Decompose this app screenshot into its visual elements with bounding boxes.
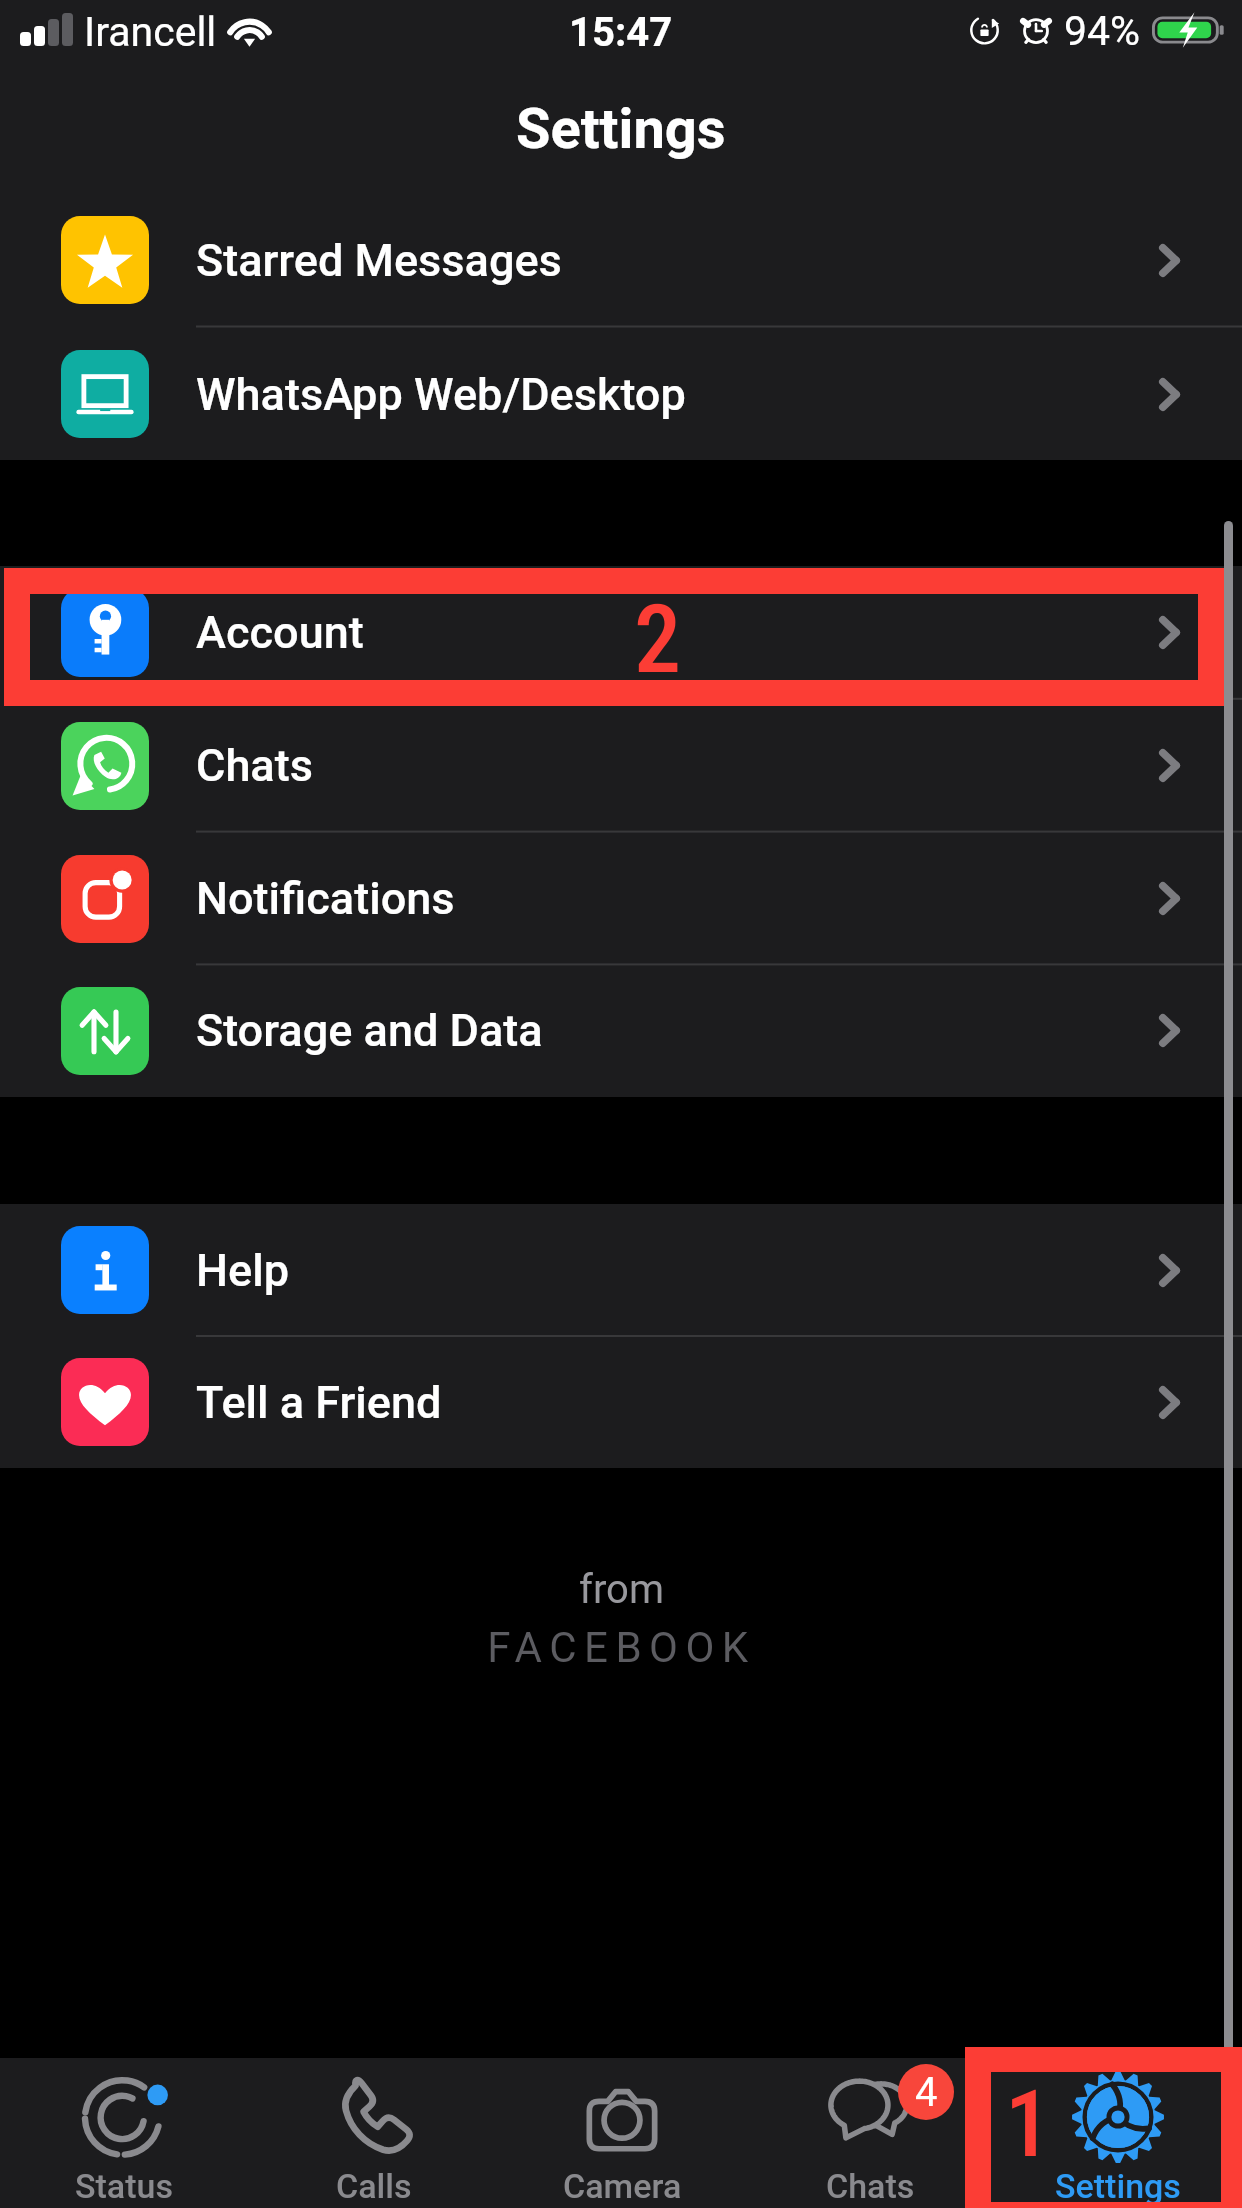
staticText: Chats [196,739,313,792]
button[interactable]: Camera [498,2058,746,2208]
button[interactable]: Storage and Data [0,964,1242,1097]
staticText: WhatsApp Web/Desktop [196,368,686,421]
staticText: Tell a Friend [196,1376,442,1429]
staticText: Settings [1055,2166,1181,2206]
button[interactable]: Settings [994,2058,1242,2208]
staticText: Help [196,1244,289,1297]
staticText: FACEBOOK [487,1623,756,1672]
staticText: Starred Messages [196,234,562,287]
button[interactable]: Notifications [0,832,1242,965]
staticText: Account [196,606,364,659]
staticText: Calls [336,2166,412,2206]
staticText: 1 [1005,2071,1052,2179]
button[interactable]: Starred Messages [0,193,1242,327]
staticText: Settings [516,96,726,162]
staticText: Storage and Data [196,1004,543,1057]
staticText: Camera [563,2166,682,2206]
staticText: 94% [1064,7,1141,55]
staticText: 15:47 [569,9,673,56]
staticText: 2 [634,585,682,695]
staticText: 4 [915,2069,938,2116]
button[interactable]: WhatsApp Web/Desktop [0,327,1242,461]
button[interactable]: Calls [249,2058,498,2208]
staticText: Chats [826,2166,915,2206]
staticText: from [579,1566,664,1613]
button[interactable]: 4 [746,2058,994,2208]
button[interactable]: Tell a Friend [0,1336,1242,1468]
button[interactable]: Status [0,2058,249,2208]
staticText: Irancell [84,8,217,56]
button[interactable]: Help [0,1204,1242,1336]
staticText: Notifications [196,872,455,925]
button[interactable]: Account [0,566,1242,699]
staticText: Status [75,2166,174,2206]
button[interactable]: Chats [0,699,1242,832]
